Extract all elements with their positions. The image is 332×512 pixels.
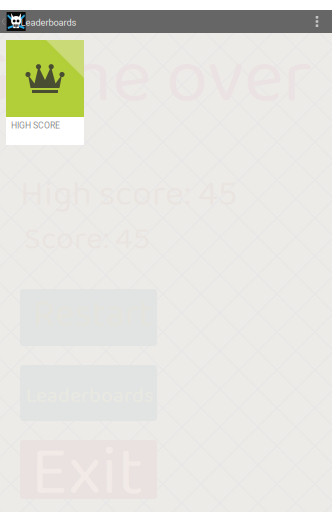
staticText: Game over — [0, 18, 312, 140]
staticText: Leaderboards — [21, 17, 77, 28]
button[interactable]: More options — [306, 10, 328, 33]
button[interactable]: Leaderboards — [1, 10, 82, 33]
staticText: Exit — [31, 418, 144, 512]
staticText: HIGH SCORE — [11, 120, 60, 131]
button[interactable]: High score leaderboard — [6, 40, 84, 145]
